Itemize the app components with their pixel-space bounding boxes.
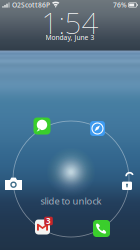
button[interactable]: Lock [121, 173, 134, 190]
button[interactable]: Phone [93, 220, 110, 237]
button[interactable]: Messages [33, 117, 50, 134]
staticText: Monday, June 3 [45, 33, 94, 42]
staticText: 76% [113, 1, 127, 9]
button[interactable]: Camera [5, 177, 22, 190]
button[interactable]: Safari [90, 121, 105, 136]
staticText: 3 [46, 216, 51, 226]
button[interactable]: Mail, 3 unread [35, 219, 50, 234]
staticText: 1:54 [41, 3, 98, 42]
staticText: slide to unlock [40, 195, 101, 207]
staticText: O2Scott86P [12, 1, 50, 9]
